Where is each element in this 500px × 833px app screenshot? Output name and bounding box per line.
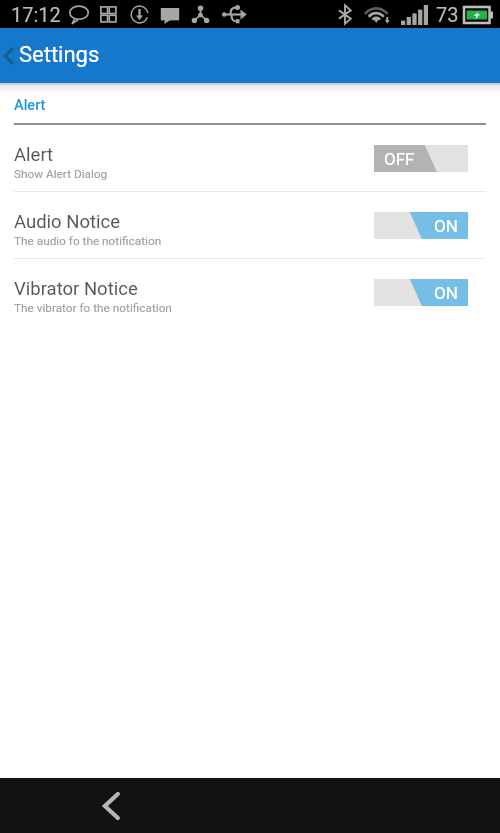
staticText: The audio fo the notification bbox=[14, 234, 162, 248]
staticText: Audio Notice bbox=[14, 211, 121, 233]
button[interactable]: Settings bbox=[0, 28, 500, 83]
button[interactable]: Back bbox=[88, 783, 134, 829]
staticText: OFF bbox=[384, 149, 415, 169]
button[interactable]: Alert bbox=[0, 125, 500, 192]
staticText: Alert bbox=[14, 144, 54, 166]
staticText: ON bbox=[434, 216, 458, 236]
button[interactable]: ON bbox=[374, 212, 468, 239]
staticText: The vibrator fo the notification bbox=[14, 301, 172, 315]
button[interactable]: Audio Notice bbox=[0, 192, 500, 259]
button[interactable]: OFF bbox=[374, 145, 468, 172]
staticText: Show Alert Dialog bbox=[14, 167, 108, 181]
staticText: 17:12 bbox=[11, 3, 61, 26]
staticText: Vibrator Notice bbox=[14, 278, 138, 300]
staticText: Alert bbox=[14, 97, 46, 114]
button[interactable]: ON bbox=[374, 279, 468, 306]
button[interactable]: Vibrator Notice bbox=[0, 259, 500, 325]
staticText: 73 bbox=[436, 3, 459, 26]
staticText: ON bbox=[434, 283, 458, 303]
staticText: Settings bbox=[19, 42, 100, 68]
